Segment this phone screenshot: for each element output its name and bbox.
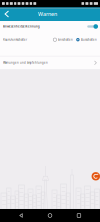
staticText: Warnungen und Empfehlungen xyxy=(3,61,48,64)
staticText: Raum-Funkschalter xyxy=(3,38,27,41)
button[interactable]: Zurück xyxy=(1,7,13,21)
staticText: Warnen xyxy=(38,10,57,18)
button[interactable]: Zurück xyxy=(13,209,29,222)
staticText: Anwesenheitserkennung xyxy=(3,25,40,28)
button[interactable]: Warnungen und Empfehlungen xyxy=(0,56,100,69)
button[interactable]: Einschalten xyxy=(53,37,73,42)
button[interactable]: Anwesenheitserkennung umschalten xyxy=(86,24,97,29)
button[interactable]: Ausschalten xyxy=(76,37,97,42)
button[interactable]: Startbildschirm xyxy=(42,210,58,221)
button[interactable]: Hilfe xyxy=(92,172,100,180)
staticText: Einschalten xyxy=(58,38,73,41)
button[interactable]: Übersicht xyxy=(71,210,87,221)
staticText: Ausschalten xyxy=(81,38,97,41)
